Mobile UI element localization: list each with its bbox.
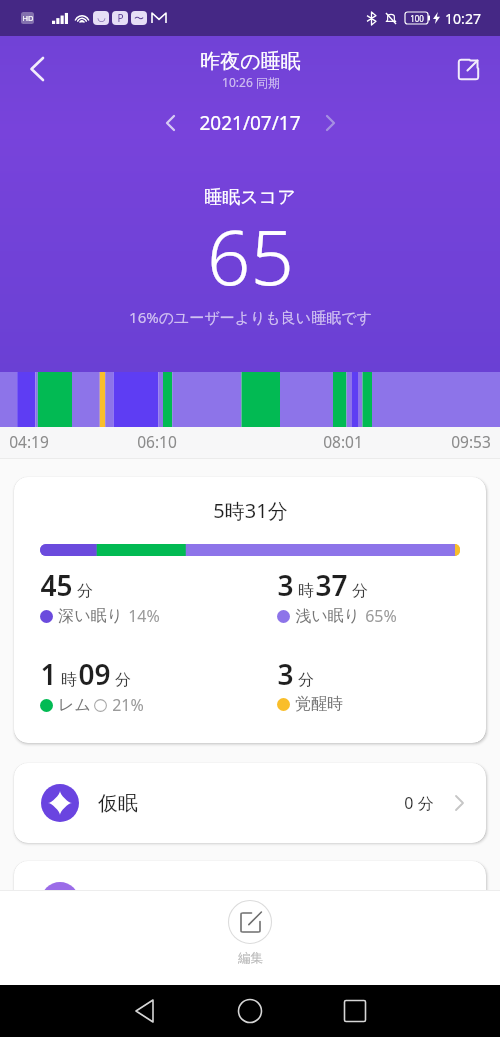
- staticText: P: [117, 11, 124, 25]
- staticText: 16%のユーザーよりも良い睡眠です: [129, 307, 372, 327]
- staticText: 分: [77, 581, 93, 601]
- staticText: 04:19: [9, 431, 49, 452]
- staticText: ◡: [97, 12, 106, 24]
- staticText: 分: [115, 670, 131, 690]
- staticText: 09:53: [451, 431, 491, 452]
- staticText: 〜: [134, 12, 144, 25]
- button[interactable]: Previous day: [151, 104, 189, 142]
- staticText: 分: [298, 670, 314, 690]
- staticText: レム: [58, 695, 91, 715]
- staticText: 21%: [112, 694, 144, 716]
- button[interactable]: 編集: [202, 898, 298, 968]
- staticText: Beta: [246, 893, 272, 909]
- staticText: 1: [40, 655, 57, 693]
- button[interactable]: Back: [14, 47, 58, 91]
- staticText: 10:26 同期: [222, 74, 280, 90]
- staticText: 時: [298, 581, 314, 601]
- staticText: 睡眠時呼吸の質: [93, 889, 234, 914]
- staticText: 65: [207, 204, 294, 308]
- staticText: 昨夜の睡眠: [200, 49, 301, 74]
- staticText: 08:01: [323, 431, 363, 452]
- button[interactable]: 仮眠: [14, 763, 486, 843]
- staticText: 14%: [128, 605, 160, 627]
- staticText: 06:10: [137, 431, 177, 452]
- staticText: 睡眠スコア: [204, 186, 296, 209]
- button[interactable]: Next day: [311, 104, 349, 142]
- button[interactable]: Share: [446, 47, 490, 91]
- staticText: 覚醒時: [295, 694, 343, 714]
- staticText: 3: [277, 655, 294, 693]
- staticText: 65%: [365, 605, 397, 627]
- staticText: 2021/07/17: [199, 110, 301, 136]
- staticText: 深い眠り: [58, 606, 123, 626]
- staticText: 浅い眠り: [295, 606, 360, 626]
- button[interactable]: 睡眠時呼吸の質: [14, 861, 486, 941]
- staticText: 37: [315, 566, 348, 604]
- staticText: 45: [40, 566, 73, 604]
- staticText: 分: [352, 581, 368, 601]
- staticText: 100: [410, 13, 424, 24]
- staticText: 5時31分: [213, 497, 288, 524]
- staticText: 時: [61, 670, 77, 690]
- staticText: 09: [78, 655, 111, 693]
- staticText: 仮眠: [98, 791, 138, 816]
- staticText: 3: [277, 566, 294, 604]
- staticText: 編集: [238, 950, 263, 966]
- staticText: 0 分: [404, 792, 434, 814]
- staticText: 10:27: [445, 9, 481, 28]
- staticText: HD: [22, 13, 34, 23]
